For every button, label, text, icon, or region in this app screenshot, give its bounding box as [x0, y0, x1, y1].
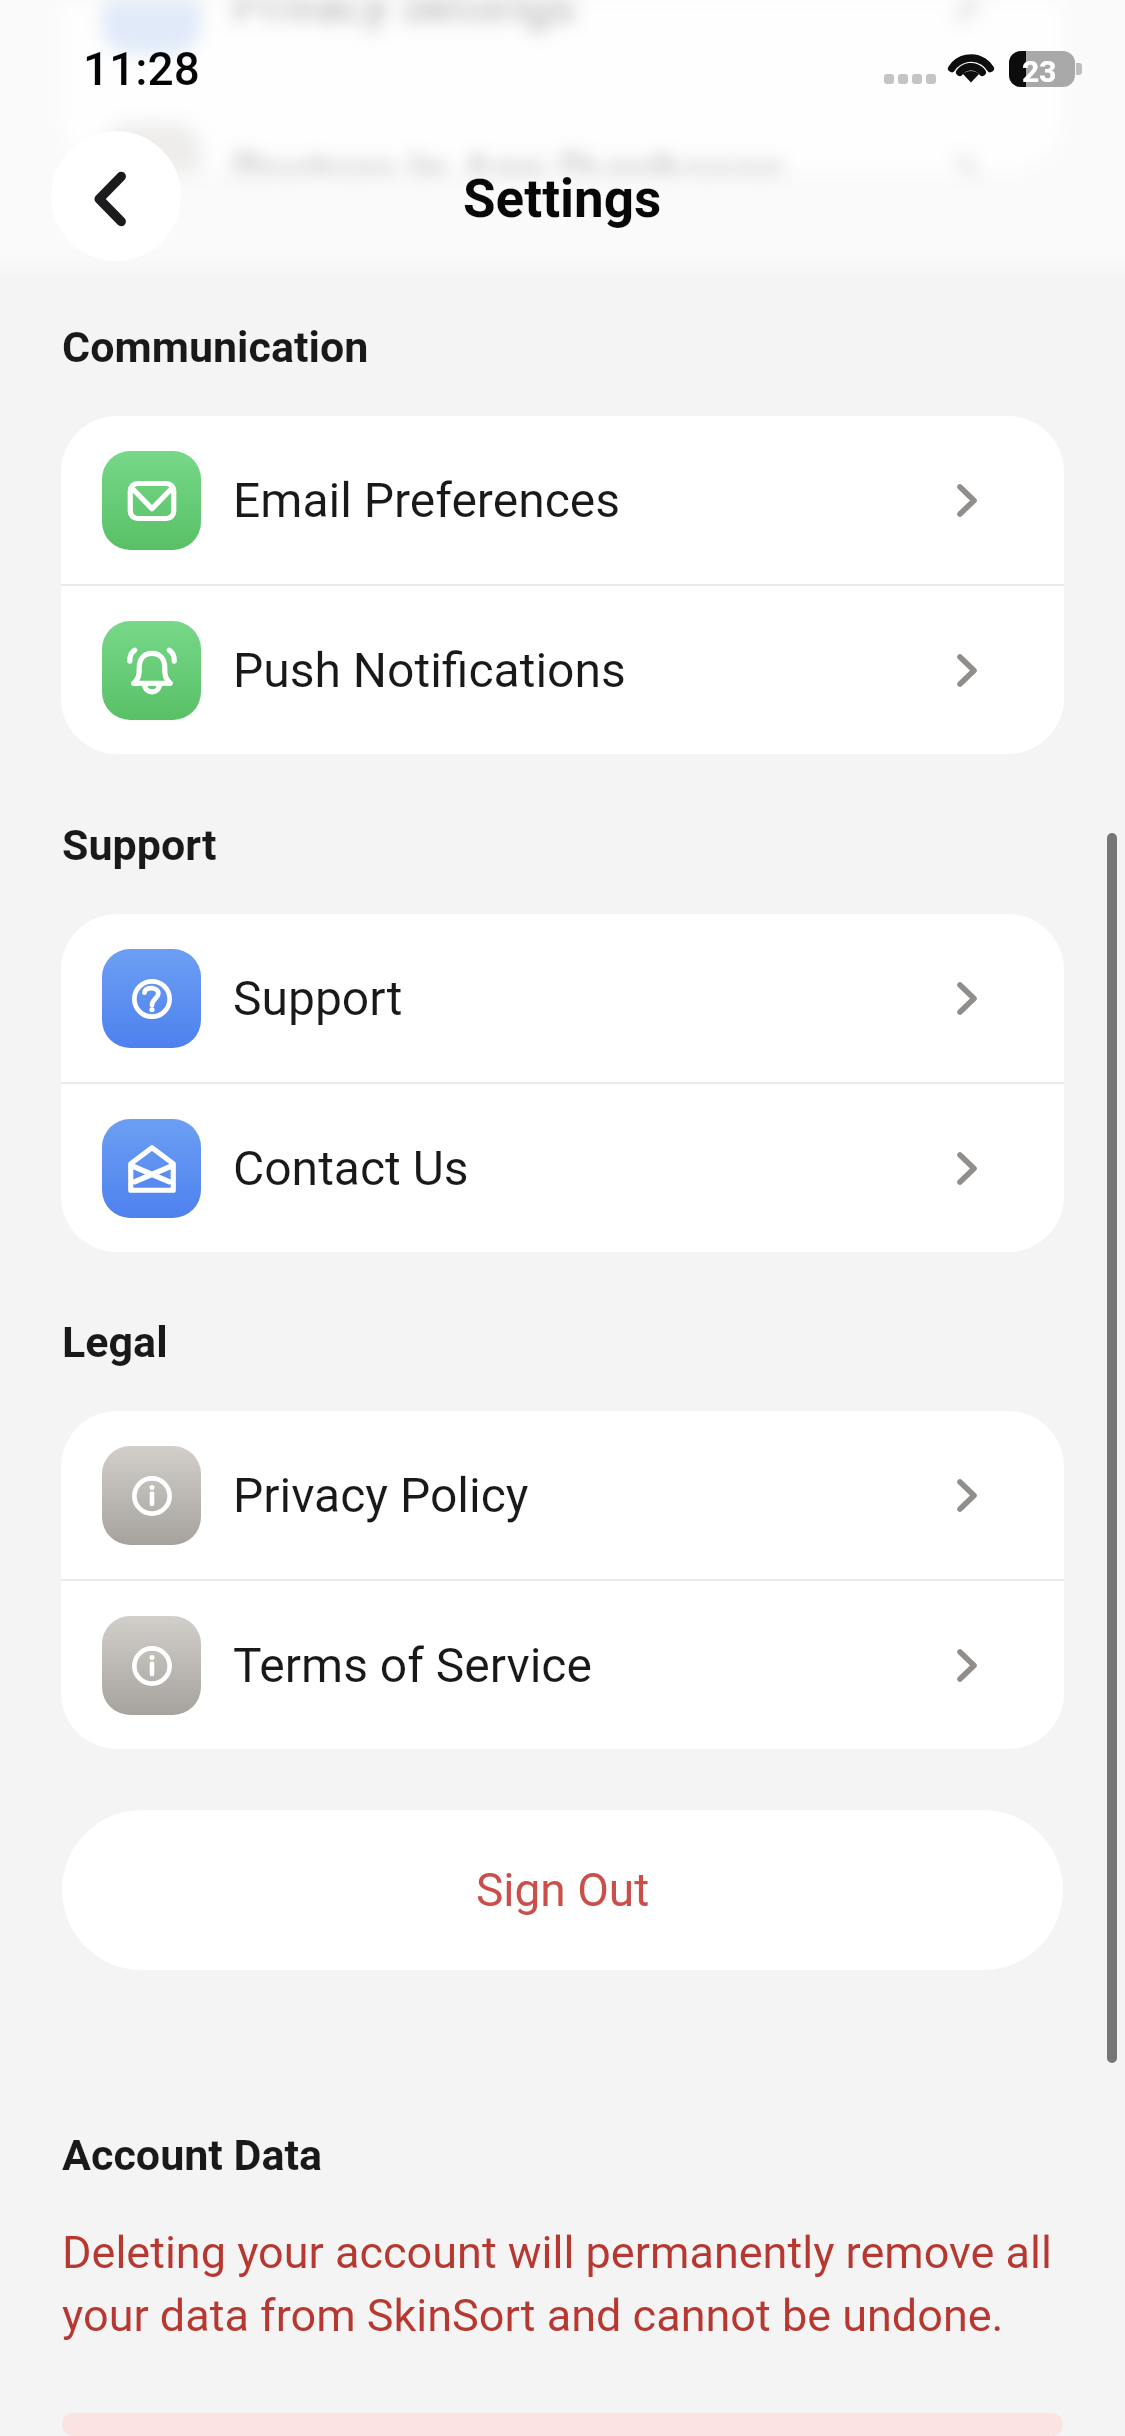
staticText: 11:28 — [83, 42, 200, 96]
button[interactable]: Contact Us — [61, 1084, 1064, 1252]
staticText: Deleting your account will permanently r… — [62, 2226, 1080, 2342]
button[interactable]: Push Notifications — [61, 586, 1064, 754]
staticText: Settings — [463, 168, 662, 230]
button[interactable]: Privacy Policy — [61, 1411, 1064, 1579]
staticText: Privacy Policy — [233, 1467, 529, 1523]
staticText: Contact Us — [233, 1140, 469, 1196]
staticText: Account Data — [62, 2130, 323, 2180]
staticText: Sign Out — [476, 1863, 650, 1917]
button[interactable]: Sign Out — [62, 1810, 1063, 1970]
staticText: Privacy Settings — [233, 0, 576, 32]
button[interactable]: Email Preferences — [61, 416, 1064, 584]
staticText: Terms of Service — [233, 1637, 592, 1693]
button[interactable]: Back — [51, 131, 181, 261]
button[interactable]: Terms of Service — [61, 1581, 1064, 1749]
staticText: Push Notifications — [233, 642, 626, 698]
staticText: Restore In-App Purchases — [233, 144, 784, 172]
staticText: Support — [233, 970, 403, 1026]
staticText: 23 — [1022, 54, 1057, 89]
staticText: Legal — [62, 1317, 168, 1367]
button[interactable]: Support — [61, 914, 1064, 1082]
staticText: Email Preferences — [233, 472, 620, 528]
staticText: Communication — [62, 322, 369, 372]
staticText: Support — [62, 820, 217, 870]
